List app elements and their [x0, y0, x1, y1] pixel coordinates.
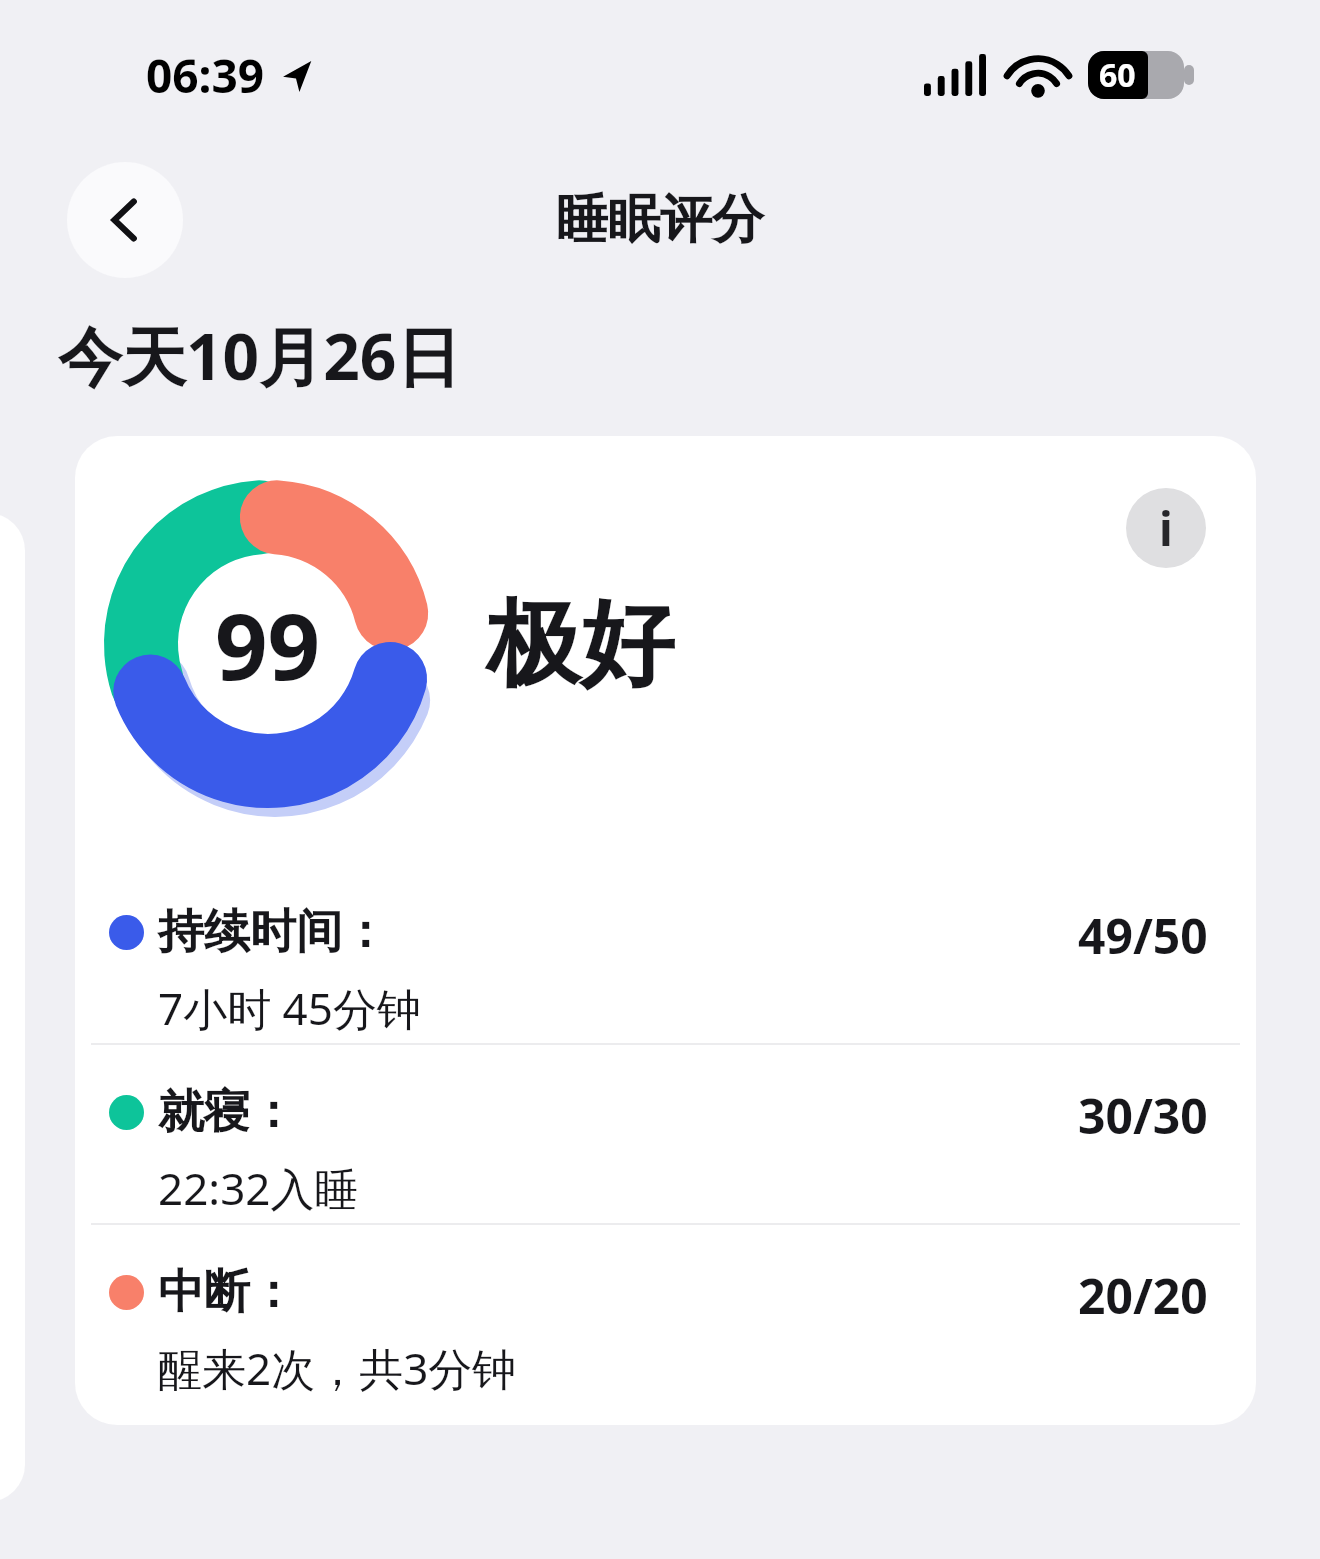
staticText: 今天10月26日 [58, 312, 461, 399]
staticText: 30/30 [1078, 1083, 1208, 1148]
button[interactable]: Back [67, 162, 183, 278]
staticText: 中断： [158, 1263, 296, 1321]
staticText: 极好 [486, 585, 674, 703]
button[interactable]: Info [1126, 488, 1206, 568]
staticText: 49/50 [1078, 903, 1208, 968]
staticText: i [1159, 497, 1173, 560]
staticText: 06:39 [146, 44, 265, 107]
staticText: 就寝： [158, 1083, 296, 1141]
staticText: 99 [215, 582, 321, 707]
button[interactable]: 持续时间： [75, 865, 1256, 1043]
button[interactable]: Info [75, 436, 1256, 1425]
staticText: 醒来2次，共3分钟 [158, 1338, 517, 1398]
staticText: 持续时间： [158, 903, 388, 961]
staticText: 7小时 45分钟 [158, 978, 421, 1038]
staticText: 22:32入睡 [158, 1158, 359, 1218]
staticText: 60 [1099, 53, 1136, 97]
button[interactable]: 中断： [75, 1225, 1256, 1403]
button[interactable]: 就寝： [75, 1045, 1256, 1223]
staticText: 睡眠评分 [556, 187, 764, 253]
staticText: 20/20 [1078, 1263, 1208, 1328]
